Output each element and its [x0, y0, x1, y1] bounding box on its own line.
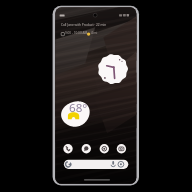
staticText: 68°	[69, 100, 88, 116]
staticText: Call Jane with Product · 22 min	[61, 23, 107, 27]
staticText: 9:00 - 10:00 AM	[65, 31, 88, 35]
staticText: 4 mi	[91, 31, 98, 35]
